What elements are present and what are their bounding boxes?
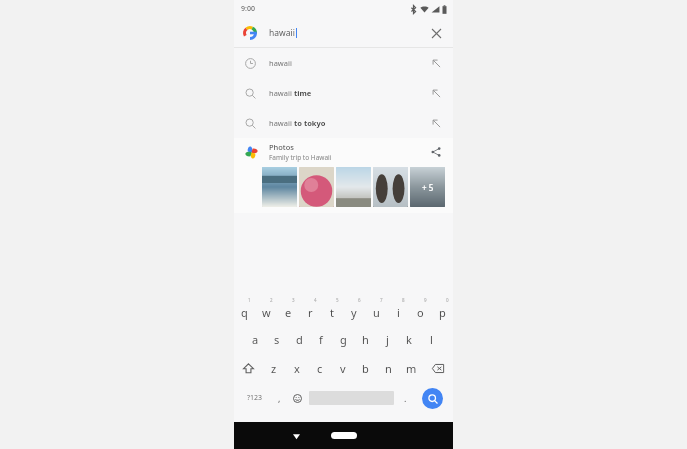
button[interactable]: l xyxy=(420,325,442,354)
button[interactable]: Photo 3 xyxy=(336,167,371,207)
staticText: 3 xyxy=(292,297,295,303)
button[interactable]: n xyxy=(377,354,400,383)
staticText: time xyxy=(294,88,312,98)
staticText: . xyxy=(404,392,407,404)
staticText: q xyxy=(241,305,248,320)
button[interactable]: Photo 1 xyxy=(262,167,297,207)
staticText: z xyxy=(271,361,277,376)
button[interactable]: 4 xyxy=(299,296,321,325)
button[interactable]: v xyxy=(331,354,354,383)
staticText: p xyxy=(439,305,446,320)
staticText: 7 xyxy=(380,297,383,303)
staticText: u xyxy=(373,305,380,320)
staticText: hawaii xyxy=(269,118,294,128)
button[interactable]: 0 xyxy=(431,296,453,325)
staticText: 4 xyxy=(314,297,317,303)
staticText: o xyxy=(417,305,424,320)
staticText: 5 xyxy=(336,297,339,303)
staticText: v xyxy=(340,361,346,376)
staticText: d xyxy=(296,332,303,347)
staticText: i xyxy=(397,305,400,320)
button[interactable]: Insert suggestion xyxy=(427,114,445,132)
staticText: 6 xyxy=(358,297,361,303)
button[interactable]: z xyxy=(263,354,285,383)
button[interactable]: . xyxy=(396,383,415,413)
button[interactable]: hawaii xyxy=(234,18,453,47)
staticText: a xyxy=(252,332,259,347)
staticText: j xyxy=(386,332,389,347)
button[interactable]: j xyxy=(376,325,398,354)
staticText: h xyxy=(362,332,369,347)
staticText: m xyxy=(406,361,417,376)
button[interactable]: hawaii xyxy=(234,108,453,138)
button[interactable]: Back xyxy=(286,426,306,446)
staticText: Family trip to Hawaii xyxy=(269,153,332,162)
button[interactable]: Shift xyxy=(234,354,263,383)
staticText: x xyxy=(294,361,300,376)
staticText: 1 xyxy=(248,297,251,303)
staticText: hawaii xyxy=(269,27,295,39)
button[interactable]: m xyxy=(400,354,423,383)
staticText: + 5 xyxy=(422,182,434,193)
staticText: f xyxy=(319,332,323,347)
button[interactable]: 6 xyxy=(343,296,365,325)
button[interactable]: 1 xyxy=(234,296,255,325)
staticText: k xyxy=(406,332,412,347)
button[interactable]: 8 xyxy=(387,296,409,325)
staticText: 2 xyxy=(270,297,273,303)
button[interactable]: Photo 2 xyxy=(299,167,334,207)
staticText: ?123 xyxy=(247,393,263,403)
staticText: Photos xyxy=(269,142,294,152)
staticText: , xyxy=(278,392,281,404)
staticText: 0 xyxy=(446,297,449,303)
staticText: w xyxy=(262,305,271,320)
staticText: l xyxy=(430,332,433,347)
button[interactable]: hawaii xyxy=(234,48,453,78)
button[interactable]: a xyxy=(245,325,266,354)
staticText: r xyxy=(308,305,313,320)
button[interactable]: 3 xyxy=(277,296,299,325)
button[interactable]: k xyxy=(398,325,420,354)
button[interactable]: c xyxy=(308,354,331,383)
staticText: 9 xyxy=(424,297,427,303)
button[interactable]: Backspace xyxy=(423,354,453,383)
button[interactable]: Insert suggestion xyxy=(427,84,445,102)
button[interactable]: f xyxy=(310,325,332,354)
button[interactable]: h xyxy=(354,325,376,354)
button[interactable]: Home xyxy=(331,432,357,439)
staticText: c xyxy=(317,361,323,376)
staticText: to tokyo xyxy=(294,118,326,128)
button[interactable]: s xyxy=(266,325,288,354)
staticText: y xyxy=(351,305,357,320)
button[interactable]: Clear query xyxy=(427,24,445,42)
staticText: e xyxy=(285,305,292,320)
button[interactable]: Photo 5 xyxy=(410,167,445,207)
staticText: hawaii xyxy=(269,58,292,68)
button[interactable]: , xyxy=(271,383,288,413)
button[interactable]: x xyxy=(285,354,308,383)
button[interactable]: Search xyxy=(422,388,443,409)
staticText: 9:00 xyxy=(241,4,255,14)
staticText: g xyxy=(340,332,347,347)
button[interactable]: Photo 4 xyxy=(373,167,408,207)
button[interactable]: hawaii xyxy=(234,78,453,108)
button[interactable]: g xyxy=(332,325,354,354)
button[interactable]: Share xyxy=(427,143,445,161)
staticText: b xyxy=(362,361,369,376)
button[interactable]: Emoji xyxy=(288,383,307,413)
button[interactable]: 7 xyxy=(365,296,387,325)
button[interactable]: Insert suggestion xyxy=(427,54,445,72)
button[interactable]: Photos xyxy=(234,138,453,213)
button[interactable]: 9 xyxy=(409,296,431,325)
button[interactable]: ?123 xyxy=(238,383,271,413)
staticText: s xyxy=(274,332,280,347)
staticText: hawaii xyxy=(269,88,294,98)
button[interactable]: 5 xyxy=(321,296,343,325)
button[interactable]: b xyxy=(354,354,377,383)
staticText: 8 xyxy=(402,297,405,303)
button[interactable]: d xyxy=(288,325,310,354)
staticText: n xyxy=(385,361,392,376)
staticText: t xyxy=(330,305,334,320)
button[interactable]: 2 xyxy=(255,296,277,325)
